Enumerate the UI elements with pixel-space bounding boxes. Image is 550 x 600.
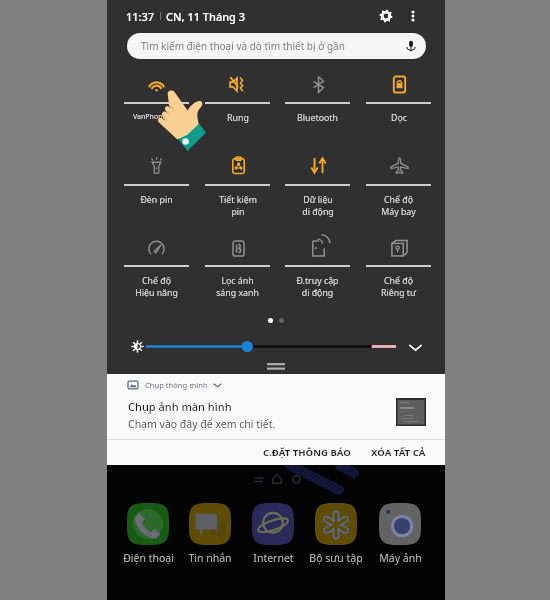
button[interactable] — [143, 339, 399, 354]
staticText: Bộ sưu tập — [309, 551, 363, 565]
staticText: Chế độ Riêng tư — [381, 275, 416, 299]
button[interactable] — [205, 68, 270, 136]
staticText: CN, 11 Tháng 3 — [166, 9, 246, 24]
button[interactable]: Settings — [376, 6, 396, 26]
staticText: XÓA TẤT CẢ — [371, 446, 426, 459]
staticText: Điện thoại — [123, 551, 174, 565]
button[interactable]: Tìm kiếm điện thoại và dò tìm thiết bị ở… — [127, 33, 426, 59]
button[interactable]: Bộ sưu tập — [307, 503, 365, 565]
button[interactable]: C.ĐẶT THÔNG BÁO — [258, 441, 356, 464]
staticText: Đ.truy cập di động — [296, 275, 339, 299]
staticText: Lọc ánh sáng xanh — [216, 275, 259, 299]
button[interactable]: Điện thoại — [119, 503, 177, 565]
button[interactable] — [124, 149, 189, 218]
staticText: Chụp ảnh màn hình — [128, 399, 232, 414]
button[interactable] — [285, 232, 350, 299]
button[interactable]: Chụp thông minh — [128, 374, 445, 396]
button[interactable]: Máy ảnh — [371, 503, 429, 565]
staticText: 11:37 — [126, 9, 155, 24]
button[interactable]: Expand — [407, 339, 423, 355]
button[interactable] — [366, 68, 431, 136]
staticText: Tìm kiếm điện thoại và dò tìm thiết bị ở… — [141, 39, 345, 53]
staticText: Đèn pin — [140, 194, 173, 206]
button[interactable] — [366, 149, 431, 218]
staticText: Tin nhắn — [188, 551, 232, 565]
button[interactable] — [124, 232, 189, 299]
button[interactable]: Recents — [250, 471, 266, 487]
button[interactable] — [285, 149, 350, 218]
button[interactable]: Home — [269, 471, 285, 487]
staticText: Internet — [253, 551, 294, 565]
button[interactable]: Back — [288, 471, 304, 487]
button[interactable]: XÓA TẤT CẢ — [366, 441, 431, 464]
staticText: Rung — [227, 112, 249, 124]
button[interactable] — [124, 68, 189, 136]
staticText: Chế độ Hiệu năng — [135, 275, 178, 299]
staticText: VanPhong_C... — [133, 112, 180, 122]
staticText: Tiết kiệm pin — [219, 194, 257, 218]
button[interactable]: Tin nhắn — [181, 503, 239, 565]
staticText: Dọc — [391, 112, 407, 124]
staticText: Bluetooth — [297, 112, 338, 124]
button[interactable] — [285, 68, 350, 136]
staticText: Chạm vào đây để xem chi tiết. — [128, 417, 276, 431]
button[interactable] — [205, 232, 270, 299]
button[interactable]: Internet — [244, 503, 302, 565]
staticText: Máy ảnh — [379, 551, 422, 565]
staticText: Dữ liệu di động — [302, 194, 334, 218]
button[interactable] — [205, 149, 270, 218]
staticText: C.ĐẶT THÔNG BÁO — [263, 446, 351, 459]
button[interactable] — [366, 232, 431, 299]
button[interactable]: More options — [403, 6, 423, 26]
staticText: Chụp thông minh — [145, 380, 208, 390]
staticText: Chế độ Máy bay — [381, 194, 416, 218]
